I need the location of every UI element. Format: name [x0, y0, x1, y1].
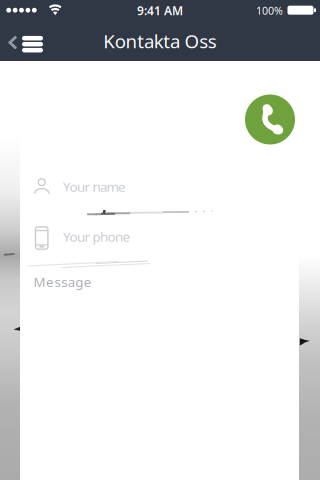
- button[interactable]: Your name: [20, 166, 299, 210]
- button[interactable]: Back / Menu: [0, 20, 50, 61]
- button[interactable]: Message: [20, 270, 299, 480]
- button[interactable]: Call: [245, 94, 295, 144]
- staticText: Message: [33, 273, 92, 291]
- button[interactable]: Your phone: [20, 216, 299, 260]
- staticText: Your phone: [63, 228, 130, 245]
- staticText: 9:41 AM: [137, 2, 183, 18]
- staticText: Kontakta Oss: [103, 29, 217, 53]
- staticText: 100%: [256, 3, 283, 18]
- staticText: Your name: [63, 178, 126, 195]
